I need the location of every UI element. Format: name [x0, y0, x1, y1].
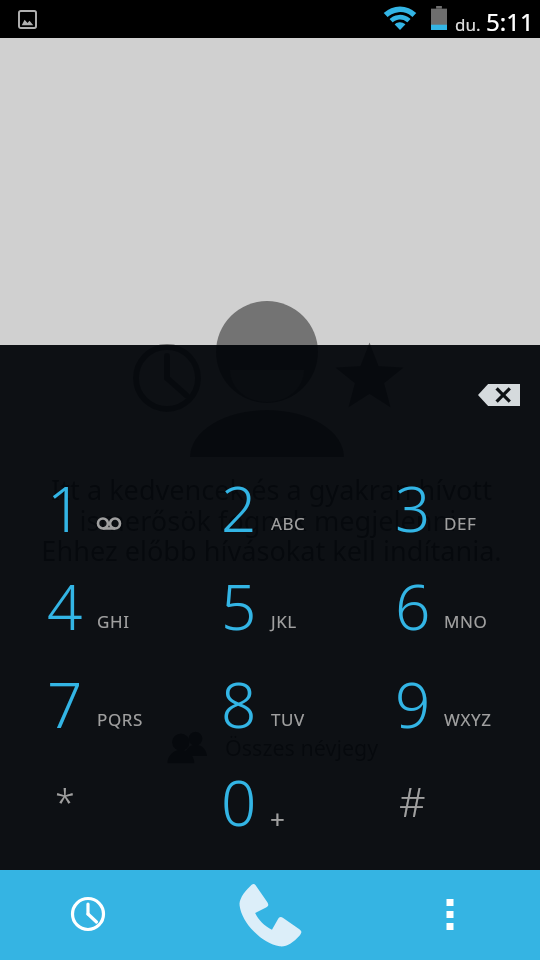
button[interactable]: 6 — [360, 559, 540, 657]
staticText: 1 — [47, 466, 83, 550]
button[interactable]: 7 — [0, 657, 180, 755]
staticText: GHI — [97, 610, 130, 633]
staticText: 6 — [395, 564, 431, 648]
button[interactable]: Recents — [48, 874, 128, 954]
staticText: TUV — [271, 708, 305, 731]
staticText: * — [55, 778, 75, 827]
staticText: 2 — [221, 466, 257, 550]
staticText: PQRS — [97, 708, 143, 731]
button[interactable]: Backspace — [478, 384, 520, 406]
button[interactable]: 3 — [360, 461, 540, 559]
staticText: MNO — [444, 610, 488, 633]
button[interactable]: 4 — [0, 559, 180, 657]
staticText: 9 — [395, 662, 431, 746]
staticText: du. — [455, 13, 481, 36]
button[interactable]: 8 — [180, 657, 360, 755]
staticText: DEF — [444, 512, 477, 535]
button[interactable]: 0 — [180, 755, 360, 853]
button[interactable]: 9 — [360, 657, 540, 755]
staticText: 0 — [221, 760, 257, 844]
staticText: 5:11 — [486, 5, 534, 38]
button[interactable]: # — [360, 755, 540, 853]
staticText: + — [270, 801, 285, 836]
button[interactable]: More options — [410, 874, 490, 954]
staticText: 5 — [221, 564, 257, 648]
button[interactable]: Dialpad — [230, 874, 310, 954]
staticText: ABC — [271, 512, 306, 535]
button[interactable]: 2 — [180, 461, 360, 559]
button[interactable]: 5 — [180, 559, 360, 657]
staticText: 8 — [221, 662, 257, 746]
staticText: Itt a kedvencek és a gyakran hívott isme… — [41, 471, 502, 569]
staticText: WXYZ — [444, 708, 492, 731]
button[interactable]: * — [0, 755, 180, 853]
button[interactable]: 1 — [0, 461, 180, 559]
staticText: 3 — [395, 466, 431, 550]
staticText: 4 — [47, 564, 83, 648]
staticText: # — [399, 773, 426, 829]
staticText: 7 — [47, 662, 83, 746]
staticText: JKL — [271, 610, 297, 633]
